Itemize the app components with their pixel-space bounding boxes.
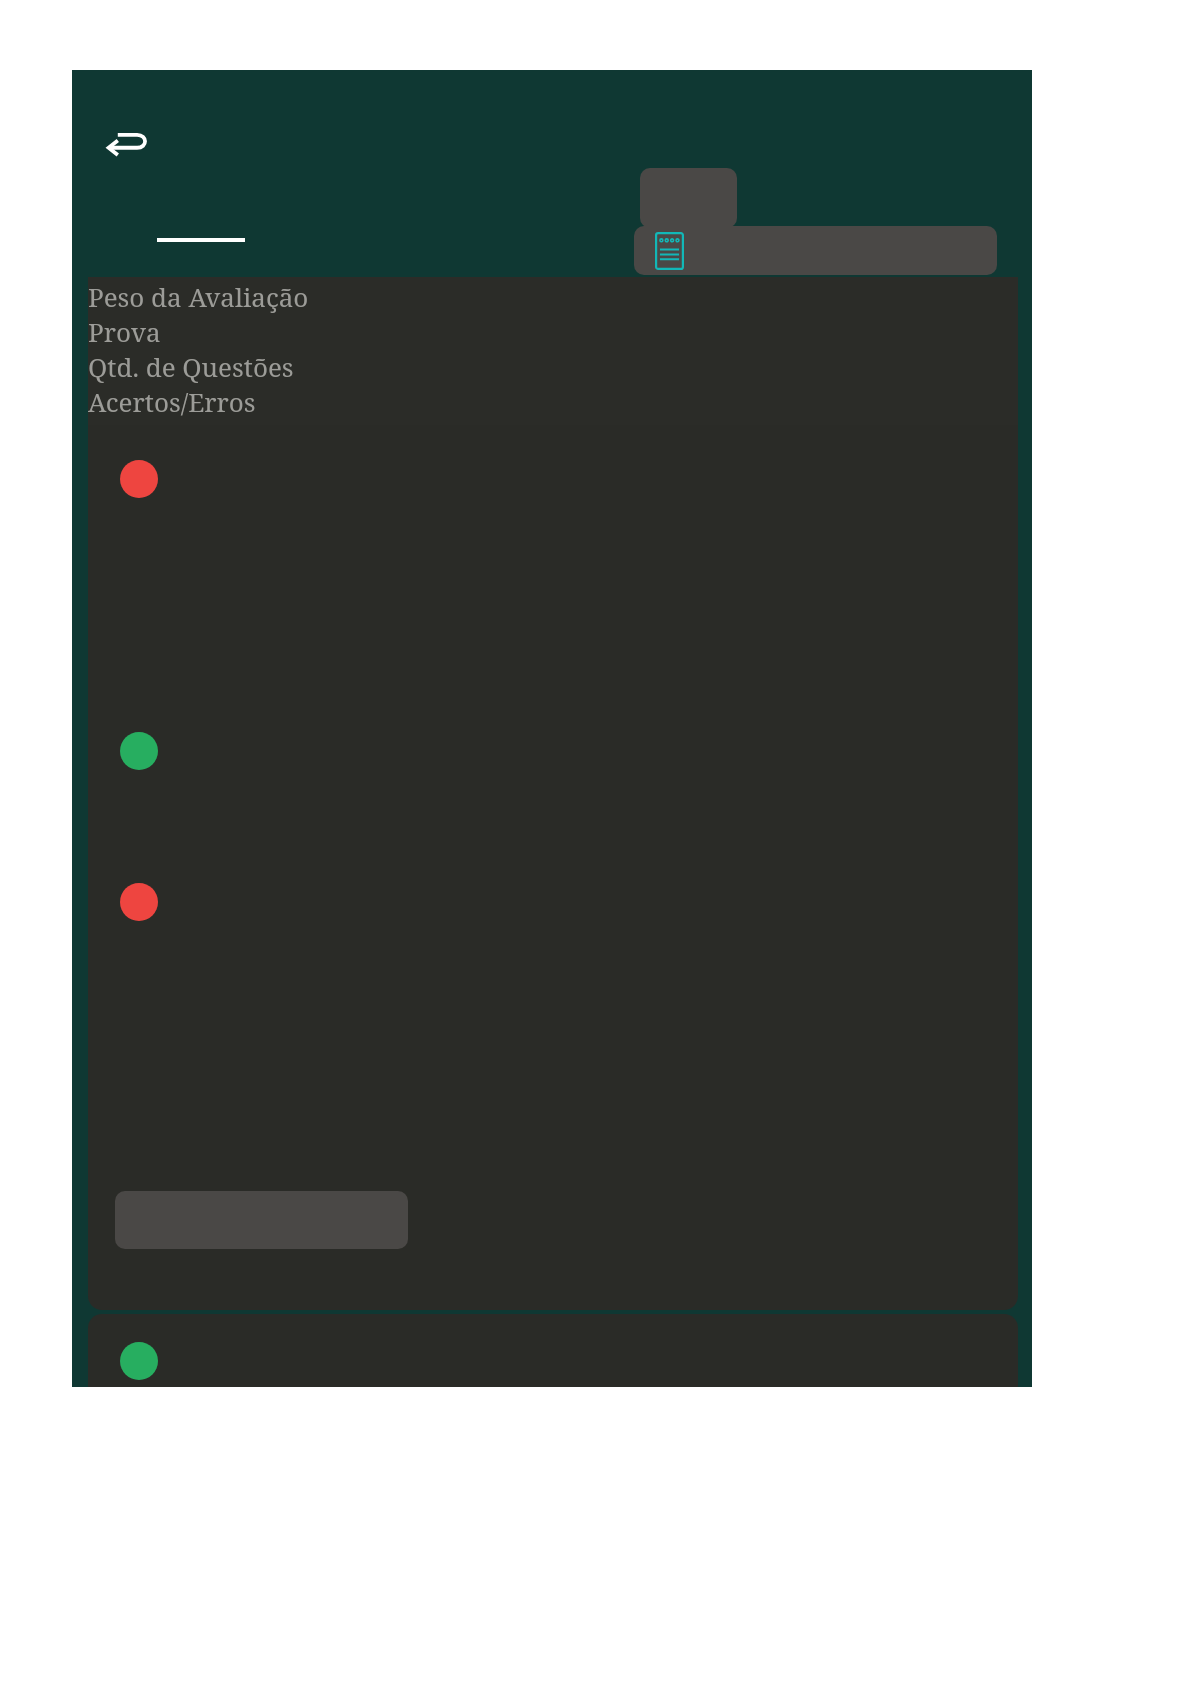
staticText: Peso da Avaliação [88,279,309,314]
button[interactable]: Back [97,118,157,166]
button[interactable] [88,425,1018,1310]
button[interactable] [640,168,737,228]
button[interactable] [88,1314,1018,1387]
button[interactable]: Document [634,226,997,275]
other: Document [655,232,684,270]
staticText: Prova [88,314,161,349]
staticText: Acertos/Erros [88,384,256,419]
staticText: Qtd. de Questões [88,349,294,384]
